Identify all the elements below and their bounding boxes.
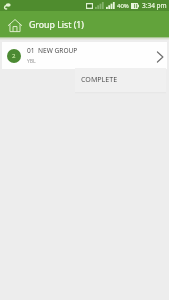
button[interactable]: COMPLETE <box>75 68 166 92</box>
staticText: 2 <box>12 52 16 60</box>
button[interactable]: 2 <box>2 42 167 69</box>
staticText: COMPLETE <box>81 74 118 84</box>
staticText: 40% <box>117 2 129 10</box>
button[interactable]: Home <box>0 11 29 37</box>
staticText: YBL <box>27 58 36 65</box>
staticText: 3:34 pm <box>142 1 167 10</box>
staticText: Group List (1) <box>29 19 84 31</box>
staticText: 01 NEW GROUP <box>27 46 78 55</box>
